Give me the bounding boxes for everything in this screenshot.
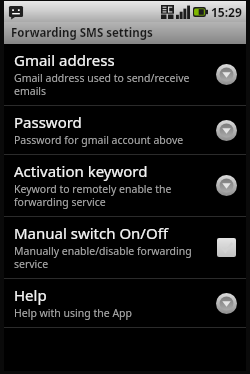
button[interactable]: Activation keyword [4,155,246,216]
staticText: Help [14,285,47,305]
staticText: Activation keyword [14,161,148,181]
staticText: 15:29 [211,4,242,20]
staticText: Forwarding SMS settings [11,25,153,41]
staticText: Keyword to remotely enable the forwardin… [14,182,208,209]
button[interactable]: Manual switch On/Off [4,217,246,278]
button[interactable]: Open dialog [214,62,238,86]
staticText: Help with using the App [14,306,133,320]
staticText: Gmail address [14,50,115,70]
staticText: Gmail address used to send/receive email… [14,71,208,98]
staticText: Manually enable/disable forwarding servi… [14,244,208,271]
button[interactable]: Open dialog [214,118,238,142]
button[interactable]: Help [4,279,246,327]
staticText: Password [14,112,82,132]
button[interactable]: Open dialog [214,173,238,197]
button[interactable]: Password [4,106,246,154]
button[interactable]: Open dialog [214,291,238,315]
button[interactable]: Gmail address [4,44,246,105]
staticText: Password for gmail account above [14,133,184,147]
button[interactable]: Toggle manual switch [214,235,238,259]
staticText: Manual switch On/Off [14,223,168,243]
